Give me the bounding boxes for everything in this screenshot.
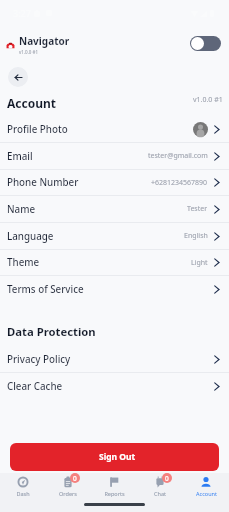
staticText: Navigator bbox=[19, 34, 70, 48]
staticText: Account bbox=[7, 95, 56, 111]
button[interactable]: Terms of Service bbox=[0, 276, 229, 302]
staticText: Tester bbox=[187, 204, 208, 214]
staticText: Light bbox=[191, 258, 208, 268]
staticText: Chat bbox=[154, 490, 166, 497]
button[interactable]: Email bbox=[0, 143, 229, 169]
button[interactable]: Clear Cache bbox=[0, 373, 229, 399]
staticText: v1.0.0 #1 bbox=[193, 95, 223, 105]
button[interactable]: Profile Photo bbox=[0, 117, 229, 142]
staticText: Privacy Policy bbox=[7, 353, 71, 366]
staticText: Email bbox=[7, 150, 33, 163]
button[interactable]: Name bbox=[0, 196, 229, 222]
staticText: Profile Photo bbox=[7, 123, 68, 136]
staticText: Phone Number bbox=[7, 176, 79, 189]
staticText: Name bbox=[7, 203, 36, 216]
button[interactable]: Sign Out bbox=[10, 443, 219, 471]
button[interactable]: Dash bbox=[0, 473, 45, 497]
staticText: Dash bbox=[16, 490, 30, 497]
button[interactable]: Theme bbox=[0, 250, 229, 275]
button[interactable]: 0 bbox=[45, 473, 91, 497]
staticText: Orders bbox=[59, 490, 77, 497]
staticText: tester@gmail.com bbox=[148, 151, 208, 161]
staticText: Account bbox=[196, 490, 217, 497]
staticText: Data Protection bbox=[7, 324, 96, 339]
staticText: v1.0.0 #1 bbox=[19, 49, 39, 55]
staticText: Sign Out bbox=[99, 451, 136, 463]
button[interactable]: Phone Number bbox=[0, 170, 229, 195]
staticText: 0 bbox=[165, 474, 169, 483]
staticText: Reports bbox=[104, 490, 125, 497]
staticText: Theme bbox=[7, 256, 40, 269]
staticText: Language bbox=[7, 230, 54, 243]
button[interactable]: Toggle dark mode bbox=[190, 36, 221, 51]
button[interactable]: Language bbox=[0, 223, 229, 249]
button[interactable]: Privacy Policy bbox=[0, 346, 229, 372]
button[interactable]: Back bbox=[8, 67, 28, 87]
staticText: English bbox=[184, 231, 208, 241]
staticText: 0 bbox=[73, 474, 77, 483]
staticText: Terms of Service bbox=[7, 283, 84, 296]
button[interactable]: Account bbox=[183, 473, 229, 497]
button[interactable]: Reports bbox=[91, 473, 137, 497]
button[interactable]: 0 bbox=[137, 473, 183, 497]
staticText: Clear Cache bbox=[7, 380, 63, 393]
staticText: +6281234567890 bbox=[151, 178, 208, 188]
